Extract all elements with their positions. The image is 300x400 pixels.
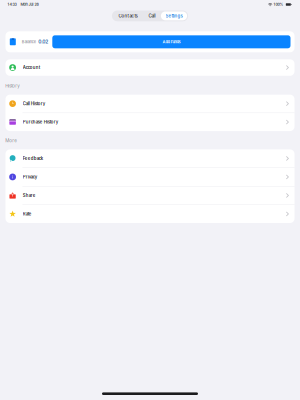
- staticText: Privacy: [23, 174, 38, 179]
- button[interactable]: Feedback: [5, 149, 294, 167]
- staticText: Rate: [23, 211, 32, 216]
- button[interactable]: Purchase History: [5, 113, 294, 131]
- staticText: Mon Jul 28: [20, 2, 38, 7]
- staticText: 0.02: [38, 39, 48, 45]
- staticText: More: [5, 138, 17, 143]
- button[interactable]: Account: [5, 59, 294, 76]
- button[interactable]: Call: [143, 11, 161, 20]
- staticText: Account: [23, 65, 41, 70]
- staticText: Call History: [23, 101, 46, 106]
- staticText: 14:33: [7, 2, 16, 7]
- staticText: Call: [148, 13, 155, 18]
- button[interactable]: Call History: [5, 95, 294, 113]
- button[interactable]: Rate: [5, 205, 294, 223]
- staticText: Settings: [165, 13, 182, 18]
- button[interactable]: Share: [5, 186, 294, 204]
- staticText: Purchase History: [23, 119, 59, 124]
- button[interactable]: Add Funds: [52, 35, 290, 48]
- staticText: Contacts: [118, 13, 137, 18]
- staticText: Add Funds: [162, 39, 180, 44]
- staticText: Feedback: [23, 156, 43, 161]
- button[interactable]: Privacy: [5, 168, 294, 186]
- staticText: Balance: [22, 39, 36, 44]
- button[interactable]: Settings: [161, 11, 187, 20]
- staticText: 100%: [274, 2, 284, 7]
- staticText: Share: [23, 193, 36, 198]
- button[interactable]: Contacts: [113, 11, 143, 20]
- staticText: History: [5, 83, 20, 89]
